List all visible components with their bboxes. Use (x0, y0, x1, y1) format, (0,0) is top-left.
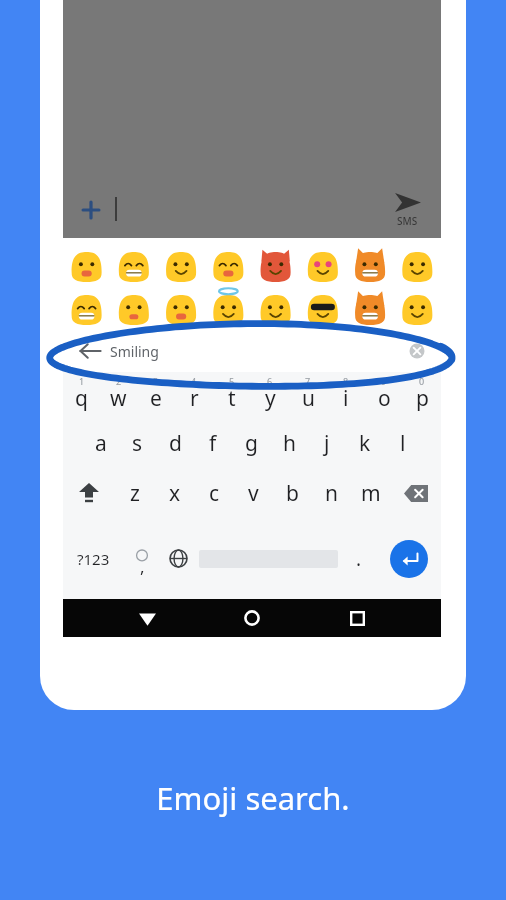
staticText: y (265, 384, 276, 413)
button[interactable]: j (308, 418, 346, 468)
button[interactable]: s (119, 418, 156, 468)
button[interactable]: Shift (63, 468, 115, 518)
button[interactable]: 5 (213, 372, 251, 418)
button[interactable]: ?123 (63, 518, 124, 599)
staticText: 3 (153, 375, 159, 387)
staticText: e (150, 384, 162, 413)
staticText: w (110, 384, 127, 413)
staticText: v (248, 479, 259, 508)
button[interactable]: v (234, 468, 273, 518)
button[interactable]: 2 (100, 372, 137, 418)
button[interactable]: Recent apps (336, 599, 378, 637)
staticText: 6 (267, 375, 273, 387)
staticText: t (228, 384, 236, 413)
staticText: g (245, 429, 258, 458)
button[interactable]: 8 (327, 372, 365, 418)
staticText: 8 (343, 375, 349, 387)
button[interactable]: Clear search (406, 340, 428, 362)
staticText: d (169, 429, 182, 458)
button[interactable]: Back (63, 330, 441, 372)
button[interactable]: d (156, 418, 194, 468)
staticText: z (130, 479, 140, 508)
button[interactable]: a (82, 418, 119, 468)
staticText: a (95, 429, 107, 458)
staticText: i (343, 384, 349, 413)
staticText: Smiling (110, 342, 159, 361)
staticText: 0 (419, 375, 425, 387)
button[interactable]: Back (76, 337, 104, 365)
button[interactable]: Add attachment (73, 192, 109, 228)
button[interactable]: 1 (63, 372, 100, 418)
staticText: n (325, 479, 338, 508)
button[interactable]: h (270, 418, 308, 468)
button[interactable]: Space (196, 518, 341, 599)
staticText: c (209, 479, 220, 508)
button[interactable]: g (232, 418, 270, 468)
button[interactable]: Send SMS (390, 189, 425, 232)
staticText: . (356, 546, 362, 572)
button[interactable]: 4 (175, 372, 213, 418)
button[interactable]: Home (231, 599, 273, 637)
button[interactable]: Backspace (390, 468, 441, 518)
staticText: x (169, 479, 181, 508)
staticText: h (283, 429, 296, 458)
button[interactable]: 3 (137, 372, 175, 418)
button[interactable]: Back (126, 599, 168, 637)
button[interactable]: 0 (403, 372, 441, 418)
staticText: 2 (116, 375, 122, 387)
staticText: 1 (79, 375, 85, 387)
staticText: , (140, 555, 145, 578)
button[interactable]: f (194, 418, 232, 468)
staticText: ?123 (77, 549, 110, 569)
staticText: k (359, 429, 371, 458)
staticText: f (209, 429, 217, 458)
staticText: l (400, 429, 406, 458)
button[interactable]: n (312, 468, 351, 518)
button[interactable]: Emoji and comma (124, 518, 160, 599)
button[interactable]: 9 (365, 372, 403, 418)
button[interactable]: k (346, 418, 384, 468)
staticText: r (190, 384, 199, 413)
staticText: 9 (381, 375, 387, 387)
button[interactable]: m (351, 468, 390, 518)
staticText: b (286, 479, 299, 508)
staticText: p (416, 384, 429, 413)
staticText: m (361, 479, 381, 508)
button[interactable]: c (195, 468, 234, 518)
staticText: q (75, 384, 88, 413)
staticText: 5 (229, 375, 235, 387)
button[interactable]: Change language (160, 518, 196, 599)
button[interactable]: z (115, 468, 155, 518)
button[interactable]: . (341, 518, 377, 599)
button[interactable]: 6 (251, 372, 289, 418)
button[interactable]: b (273, 468, 312, 518)
staticText: s (132, 429, 143, 458)
staticText: SMS (397, 214, 418, 228)
staticText: u (302, 384, 315, 413)
staticText: Emoji search. (156, 777, 350, 819)
staticText: j (324, 429, 330, 458)
button[interactable]: x (155, 468, 195, 518)
staticText: o (378, 384, 391, 413)
staticText: 4 (191, 375, 197, 387)
button[interactable]: Enter (390, 540, 428, 578)
button[interactable]: 7 (289, 372, 327, 418)
button[interactable]: l (384, 418, 422, 468)
staticText: 7 (305, 375, 311, 387)
